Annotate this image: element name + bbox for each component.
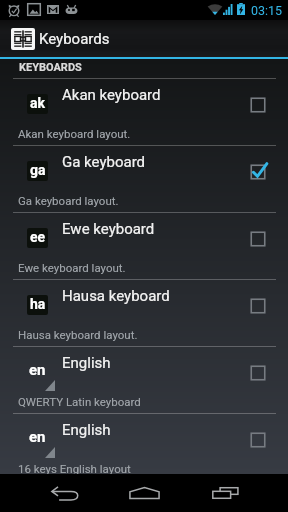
staticText: Ewe keyboard layout. xyxy=(18,261,126,274)
button[interactable]: Home xyxy=(124,474,164,512)
staticText: KEYBOARDS xyxy=(19,61,82,74)
staticText: English xyxy=(62,354,111,372)
button[interactable]: ak xyxy=(0,79,288,145)
staticText: en xyxy=(29,428,46,446)
staticText: 03:15 xyxy=(251,3,283,18)
button[interactable]: en xyxy=(0,347,288,413)
staticText: ha xyxy=(30,296,46,312)
staticText: Ga keyboard layout. xyxy=(18,194,119,207)
button[interactable]: Disabled xyxy=(248,363,268,383)
button[interactable]: Disabled xyxy=(248,229,268,249)
button[interactable]: Disabled xyxy=(248,296,268,316)
button[interactable]: ha xyxy=(0,280,288,346)
staticText: en xyxy=(29,361,46,379)
button[interactable]: Disabled xyxy=(248,430,268,450)
staticText: Ga keyboard xyxy=(62,153,146,171)
button[interactable]: Recents xyxy=(205,474,245,512)
staticText: Ewe keyboard xyxy=(62,220,155,238)
button[interactable]: en xyxy=(0,414,288,474)
staticText: ak xyxy=(30,95,45,111)
staticText: Hausa keyboard xyxy=(62,287,170,305)
button[interactable]: Enabled xyxy=(248,162,268,182)
staticText: ee xyxy=(30,229,46,245)
staticText: Keyboards xyxy=(39,30,110,48)
staticText: ga xyxy=(30,162,46,178)
button[interactable]: ee xyxy=(0,213,288,279)
staticText: Hausa keyboard layout. xyxy=(18,328,138,341)
staticText: 16 keys English layout xyxy=(18,462,131,475)
staticText: Akan keyboard xyxy=(62,86,161,104)
staticText: English xyxy=(62,421,111,439)
button[interactable]: ga xyxy=(0,146,288,212)
button[interactable]: Back xyxy=(44,474,84,512)
button[interactable]: Disabled xyxy=(248,95,268,115)
staticText: Akan keyboard layout. xyxy=(18,127,131,140)
staticText: QWERTY Latin keyboard xyxy=(18,395,141,408)
